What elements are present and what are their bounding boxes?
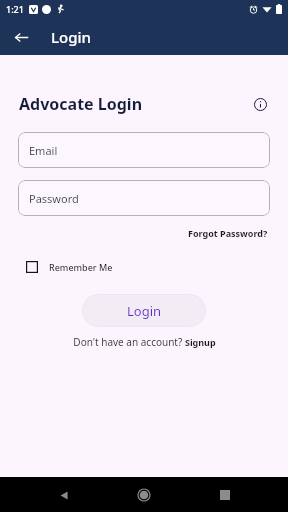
staticText: Don't have an account? Signup	[73, 335, 216, 349]
staticText: Login	[127, 302, 162, 320]
button[interactable]: Login	[82, 294, 206, 327]
button[interactable]: Back	[47, 478, 81, 512]
button[interactable]: Email	[18, 132, 270, 168]
button[interactable]: Recent apps	[208, 478, 242, 512]
staticText: Forgot Password?	[188, 227, 268, 239]
button[interactable]: Back	[8, 24, 34, 50]
staticText: Advocate Login	[19, 93, 143, 115]
button[interactable]: Don't have an account? Signup	[70, 333, 219, 351]
button[interactable]: Home	[127, 478, 161, 512]
staticText: Email	[29, 143, 58, 158]
button[interactable]: Password	[18, 180, 270, 216]
button[interactable]: Information	[248, 92, 272, 116]
staticText: Password	[29, 191, 79, 206]
staticText: Login	[51, 27, 91, 47]
button[interactable]: Forgot Password?	[186, 225, 270, 241]
button[interactable]: Remember Me	[26, 258, 119, 276]
staticText: 1:21	[6, 3, 24, 15]
staticText: Remember Me	[49, 261, 113, 273]
